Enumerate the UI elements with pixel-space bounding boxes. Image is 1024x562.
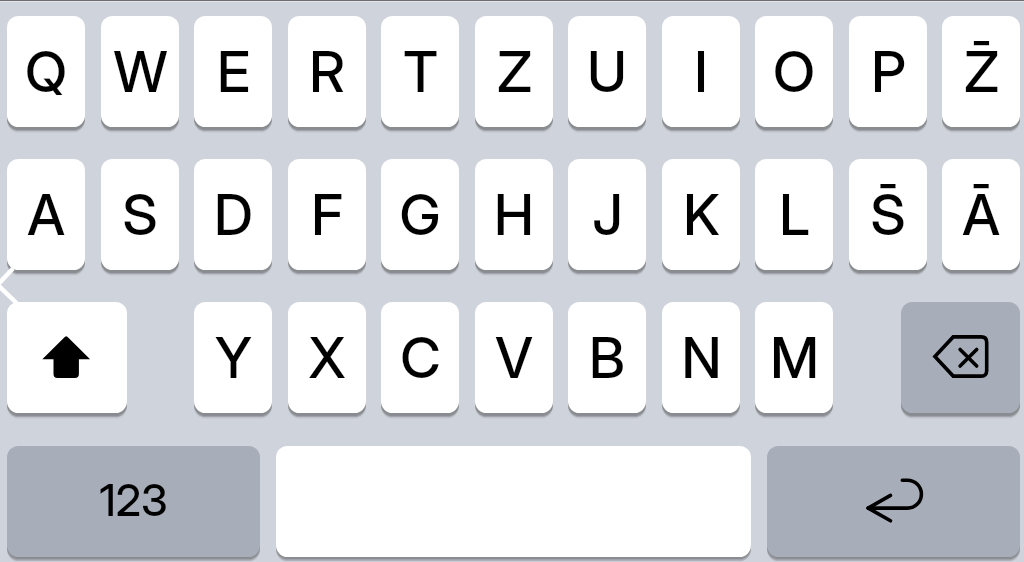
staticText: Q	[25, 38, 67, 106]
staticText: L	[779, 181, 810, 249]
button[interactable]: B	[568, 302, 646, 413]
button[interactable]: Q	[7, 16, 85, 127]
button[interactable]: D	[194, 159, 272, 270]
button[interactable]: Space	[276, 446, 751, 557]
button[interactable]: Enter	[767, 446, 1020, 557]
button[interactable]: G	[381, 159, 459, 270]
staticText: I	[694, 38, 708, 106]
button[interactable]: I	[662, 16, 740, 127]
button[interactable]: E	[194, 16, 272, 127]
button[interactable]: Ā	[942, 159, 1020, 270]
staticText: B	[589, 324, 625, 392]
staticText: C	[400, 324, 441, 392]
staticText: W	[113, 38, 168, 106]
button[interactable]: Z	[475, 16, 553, 127]
staticText: J	[592, 181, 623, 249]
button[interactable]: A	[7, 159, 85, 270]
button[interactable]: H	[475, 159, 553, 270]
button[interactable]: F	[288, 159, 366, 270]
staticText: Ā	[962, 181, 1000, 249]
staticText: K	[683, 181, 720, 249]
staticText: A	[27, 181, 65, 249]
staticText: Y	[215, 324, 252, 392]
button[interactable]: T	[381, 16, 459, 127]
staticText: M	[770, 324, 819, 392]
staticText: Z̄	[964, 38, 999, 106]
button[interactable]: O	[755, 16, 833, 127]
staticText: S̄	[870, 181, 906, 249]
staticText: H	[494, 181, 534, 249]
button[interactable]: X	[288, 302, 366, 413]
button[interactable]: Backspace	[901, 302, 1020, 413]
staticText: R	[309, 38, 345, 106]
button[interactable]: W	[101, 16, 179, 127]
staticText: T	[403, 38, 438, 106]
staticText: F	[311, 181, 343, 249]
staticText: V	[495, 324, 533, 392]
staticText: U	[587, 38, 627, 106]
staticText: S	[122, 181, 158, 249]
button[interactable]: S	[101, 159, 179, 270]
button[interactable]: P	[849, 16, 927, 127]
staticText: X	[308, 324, 346, 392]
button[interactable]: 123	[7, 446, 260, 557]
button[interactable]: J	[568, 159, 646, 270]
staticText: P	[871, 38, 906, 106]
staticText: 123	[99, 473, 168, 526]
button[interactable]: Shift	[7, 302, 127, 413]
button[interactable]: Y	[194, 302, 272, 413]
staticText: E	[217, 38, 250, 106]
button[interactable]: U	[568, 16, 646, 127]
button[interactable]: S̄	[849, 159, 927, 270]
staticText: G	[399, 181, 441, 249]
staticText: N	[681, 324, 722, 392]
button[interactable]: V	[475, 302, 553, 413]
button[interactable]: M	[755, 302, 833, 413]
staticText: O	[773, 38, 815, 106]
staticText: D	[214, 181, 253, 249]
button[interactable]: L	[755, 159, 833, 270]
button[interactable]: N	[662, 302, 740, 413]
button[interactable]: C	[381, 302, 459, 413]
button[interactable]: R	[288, 16, 366, 127]
button[interactable]: K	[662, 159, 740, 270]
button[interactable]: Z̄	[942, 16, 1020, 127]
staticText: Z	[497, 38, 532, 106]
